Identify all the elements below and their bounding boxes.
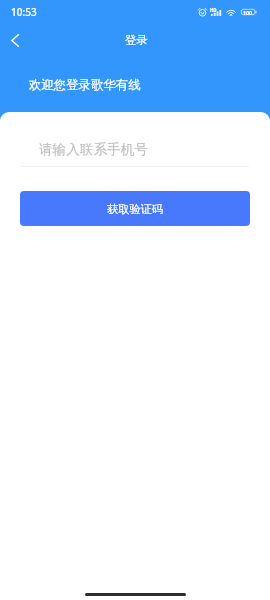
staticText: HD bbox=[210, 7, 217, 13]
button[interactable]: Back bbox=[0, 25, 30, 55]
staticText: 10:53 bbox=[11, 5, 37, 19]
staticText: 请输入联系手机号 bbox=[39, 141, 148, 158]
button[interactable]: 获取验证码 bbox=[20, 191, 250, 226]
staticText: 登录 bbox=[125, 33, 148, 47]
staticText: 获取验证码 bbox=[107, 202, 163, 216]
staticText: 100 bbox=[243, 9, 252, 16]
button[interactable]: 请输入联系手机号 bbox=[20, 130, 249, 167]
staticText: 欢迎您登录歌华有线 bbox=[29, 77, 141, 93]
